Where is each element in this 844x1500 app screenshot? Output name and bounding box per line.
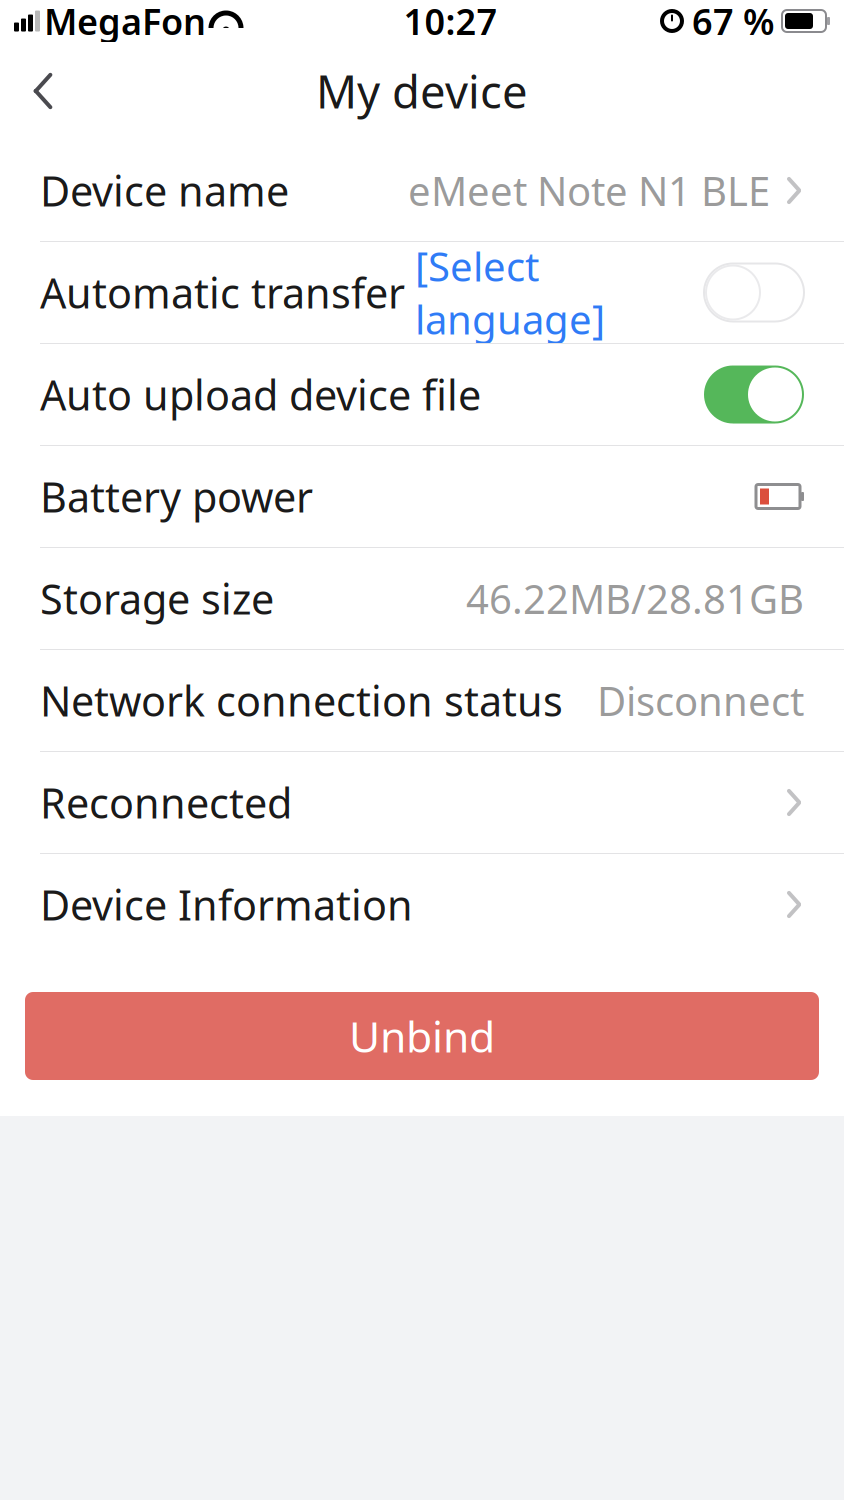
staticText: Battery power — [40, 469, 313, 524]
staticText: Network connection status — [40, 673, 563, 728]
staticText: Reconnected — [40, 775, 292, 830]
staticText: Device name — [40, 163, 289, 218]
staticText: Disconnect — [597, 674, 804, 727]
button[interactable]: Reconnected — [0, 752, 844, 853]
staticText: Device Information — [40, 877, 413, 932]
staticText: Automatic transfer — [40, 265, 405, 320]
staticText: eMeet Note N1 BLE — [408, 164, 770, 217]
button[interactable]: Device name — [0, 140, 844, 241]
staticText: Storage size — [40, 571, 274, 626]
staticText: Auto upload device file — [40, 367, 481, 422]
staticText: My device — [316, 61, 528, 121]
button[interactable]: Unbind — [25, 992, 819, 1080]
button[interactable]: [Select language] — [405, 239, 605, 346]
staticText: 67 % — [692, 0, 775, 45]
staticText: Unbind — [349, 1008, 495, 1064]
staticText: MegaFon — [44, 0, 206, 45]
button[interactable]: Device Information — [0, 854, 844, 955]
button[interactable]: Auto upload device file toggle — [704, 365, 804, 423]
staticText: 10:27 — [403, 0, 497, 45]
button[interactable]: Back — [8, 56, 78, 126]
button[interactable]: Automatic transfer toggle — [704, 263, 804, 321]
staticText: 46.22MB/28.81GB — [466, 572, 804, 625]
staticText: [Select language] — [415, 239, 605, 346]
